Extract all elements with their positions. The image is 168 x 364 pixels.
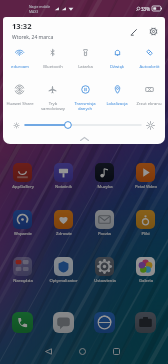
staticText: Nagie mobile	[29, 4, 51, 9]
staticText: Petal Video	[135, 184, 157, 190]
button[interactable]: eduroam	[3, 48, 36, 70]
button[interactable]: Back	[36, 339, 60, 363]
staticText: eduroam	[11, 64, 29, 70]
staticText: Transmisja danych	[74, 101, 96, 111]
staticText: Zdrowie	[56, 231, 72, 237]
button[interactable]: Ustawienia	[86, 257, 123, 284]
button[interactable]: Muzyka	[86, 163, 123, 190]
button[interactable]: Pliki	[127, 210, 164, 237]
staticText: Tryb samolotowy	[41, 101, 65, 111]
button[interactable]: Home	[70, 339, 94, 363]
staticText: Autoobrót	[139, 64, 160, 70]
staticText: Dźwięk	[110, 64, 124, 70]
staticText: Narzędzia	[13, 278, 33, 284]
button[interactable]: Latarka	[69, 48, 101, 70]
button[interactable]: Settings	[146, 24, 161, 39]
button[interactable]: Lokalizacja	[101, 85, 133, 107]
button[interactable]: Bluetooth	[36, 48, 69, 70]
staticText: Zrzut ekranu	[136, 101, 162, 107]
button[interactable]: Narzędzia	[4, 257, 41, 284]
staticText: Ustawienia	[94, 278, 116, 284]
staticText: Notatnik	[55, 184, 72, 190]
staticText: 13:32	[12, 21, 32, 31]
button[interactable]: Edit quick settings	[126, 24, 141, 39]
staticText: Wsparcie	[14, 231, 32, 237]
staticText: Latarka	[78, 64, 93, 70]
button[interactable]: Zdrowie	[45, 210, 82, 237]
button[interactable]: Optymalizator	[45, 257, 82, 284]
button[interactable]: Notatnik	[45, 163, 82, 190]
button[interactable]: Autoobrót	[133, 48, 165, 70]
button[interactable]	[86, 312, 123, 333]
button[interactable]: Petal Video	[127, 163, 164, 190]
staticText: Poczta	[98, 231, 111, 237]
staticText: Lokalizacja	[106, 101, 128, 107]
staticText: Wtorek, 24 marca	[12, 34, 54, 41]
staticText: AppGallery	[12, 184, 34, 190]
staticText: Huawei Share	[6, 101, 34, 107]
button[interactable]	[25, 119, 141, 131]
button[interactable]: Zrzut ekranu	[133, 85, 165, 107]
button[interactable]	[4, 312, 41, 333]
staticText: Galeria	[139, 278, 153, 284]
button[interactable]	[127, 312, 164, 333]
button[interactable]: Huawei Share	[3, 85, 36, 107]
staticText: Optymalizator	[49, 278, 78, 284]
staticText: Muzyka	[97, 184, 113, 190]
button[interactable]: Wsparcie	[4, 210, 41, 237]
staticText: Bluetooth	[43, 64, 63, 70]
button[interactable]	[45, 312, 82, 333]
button[interactable]: Poczta	[86, 210, 123, 237]
button[interactable]: Galeria	[127, 257, 164, 284]
button[interactable]: Transmisja danych	[69, 85, 101, 111]
button[interactable]: Dźwięk	[101, 48, 133, 70]
button[interactable]: Recent apps	[104, 339, 128, 363]
staticText: Pliki	[141, 231, 150, 237]
staticText: 33%	[141, 6, 150, 12]
button[interactable]: AppGallery	[4, 163, 41, 190]
button[interactable]: Tryb samolotowy	[36, 85, 69, 111]
staticText: MAX3	[29, 9, 39, 14]
